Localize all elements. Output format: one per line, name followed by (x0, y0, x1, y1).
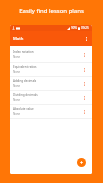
button[interactable]: Options (81, 80, 88, 87)
staticText: None (13, 112, 21, 116)
staticText: Easily find lesson plans (0, 7, 103, 15)
button[interactable]: More options (83, 35, 90, 42)
staticText: 09:25 (81, 26, 89, 30)
staticText: Equivalent ratios (13, 65, 37, 69)
button[interactable]: Options (81, 108, 88, 115)
button[interactable]: Options (81, 51, 88, 58)
button[interactable]: Equivalent ratios (10, 63, 92, 76)
staticText: None (13, 98, 21, 102)
staticText: Adding decimals (13, 79, 37, 83)
button[interactable]: Options (81, 94, 88, 101)
button[interactable]: Add lesson plan (77, 158, 86, 167)
button[interactable]: Absolute value (10, 105, 92, 118)
button[interactable]: Options (81, 66, 88, 73)
staticText: Index notation (13, 50, 34, 54)
staticText: None (13, 55, 21, 59)
button[interactable]: Index notation (10, 46, 92, 62)
staticText: None (13, 70, 21, 74)
button[interactable]: Adding decimals (10, 77, 92, 90)
staticText: Math (13, 36, 24, 42)
button[interactable]: Dividing decimals (10, 91, 92, 104)
staticText: Dividing decimals (13, 93, 38, 97)
staticText: Absolute value (13, 107, 34, 111)
staticText: 90% (71, 26, 77, 30)
staticText: None (13, 84, 21, 88)
